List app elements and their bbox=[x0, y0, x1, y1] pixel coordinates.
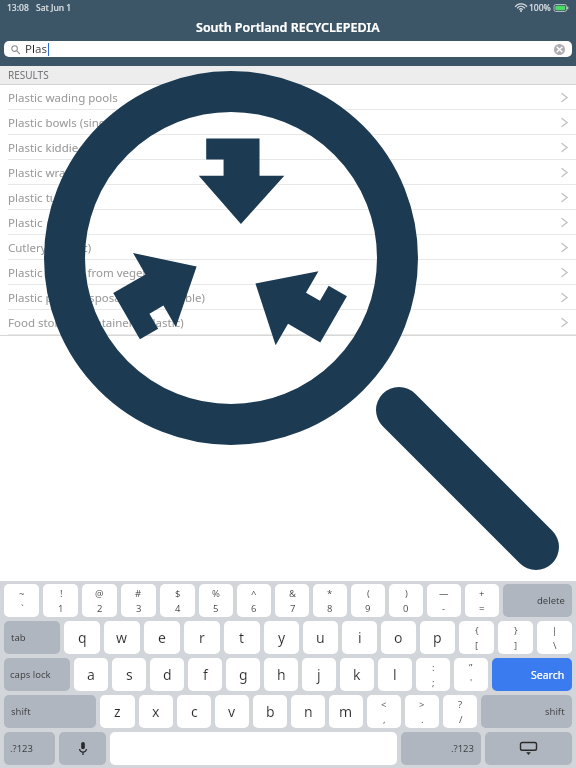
button[interactable]: shift bbox=[481, 695, 572, 728]
button[interactable]: Plastic wading pools bbox=[0, 85, 576, 110]
staticText: } bbox=[514, 624, 518, 637]
button[interactable]: n bbox=[291, 695, 325, 728]
button[interactable]: Food storage containers (plastic) bbox=[0, 310, 576, 335]
button[interactable]: Plastic netting from vegetables bbox=[0, 260, 576, 285]
button[interactable]: t bbox=[224, 621, 260, 654]
button[interactable]: Plas bbox=[4, 41, 572, 57]
button[interactable]: ? bbox=[443, 695, 477, 728]
button[interactable]: o bbox=[381, 621, 416, 654]
button[interactable]: ” bbox=[454, 658, 488, 691]
button[interactable]: Clear text bbox=[551, 41, 567, 57]
staticText: ) bbox=[405, 587, 408, 600]
button[interactable]: plastic tubing bbox=[0, 185, 576, 210]
staticText: shift bbox=[11, 705, 31, 718]
button[interactable]: Search bbox=[492, 658, 572, 691]
button[interactable]: % bbox=[199, 584, 233, 617]
staticText: . bbox=[421, 713, 424, 726]
staticText: ! bbox=[60, 587, 63, 600]
button[interactable]: Plastic kiddie pools bbox=[0, 135, 576, 160]
button[interactable]: d bbox=[150, 658, 184, 691]
staticText: # bbox=[135, 587, 142, 600]
button[interactable]: e bbox=[144, 621, 180, 654]
button[interactable]: a bbox=[74, 658, 108, 691]
button[interactable]: delete bbox=[503, 584, 572, 617]
button[interactable]: ! bbox=[43, 584, 78, 617]
staticText: z bbox=[114, 702, 121, 721]
staticText: + bbox=[479, 587, 485, 600]
button[interactable]: r bbox=[184, 621, 220, 654]
button[interactable]: x bbox=[139, 695, 173, 728]
button[interactable]: Plastic bowls (single-use) bbox=[0, 110, 576, 135]
button[interactable]: y bbox=[264, 621, 299, 654]
button[interactable]: h bbox=[264, 658, 298, 691]
button[interactable]: tab bbox=[4, 621, 60, 654]
staticText: 0 bbox=[403, 602, 409, 615]
button[interactable]: ) bbox=[389, 584, 423, 617]
button[interactable]: l bbox=[378, 658, 412, 691]
staticText: p bbox=[433, 628, 442, 647]
staticText: = bbox=[479, 602, 485, 615]
button[interactable]: : bbox=[416, 658, 450, 691]
button[interactable]: * bbox=[313, 584, 347, 617]
button[interactable]: ( bbox=[351, 584, 385, 617]
button[interactable]: $ bbox=[160, 584, 195, 617]
button[interactable]: q bbox=[64, 621, 100, 654]
button[interactable]: caps lock bbox=[4, 658, 70, 691]
button[interactable]: g bbox=[226, 658, 260, 691]
staticText: b bbox=[266, 702, 275, 721]
button[interactable]: } bbox=[498, 621, 533, 654]
button[interactable]: k bbox=[340, 658, 374, 691]
staticText: i bbox=[358, 628, 362, 647]
button[interactable]: ^ bbox=[237, 584, 271, 617]
button[interactable]: Dictate bbox=[59, 732, 106, 765]
button[interactable]: i bbox=[342, 621, 377, 654]
button[interactable]: + bbox=[465, 584, 499, 617]
button[interactable]: { bbox=[459, 621, 494, 654]
button[interactable]: v bbox=[215, 695, 249, 728]
button[interactable]: | bbox=[537, 621, 572, 654]
button[interactable]: Plastic wrap bbox=[0, 160, 576, 185]
staticText: ~ bbox=[19, 587, 25, 600]
button[interactable]: w bbox=[104, 621, 140, 654]
button[interactable]: f bbox=[188, 658, 222, 691]
button[interactable]: j bbox=[302, 658, 336, 691]
staticText: r bbox=[199, 628, 205, 647]
staticText: % bbox=[212, 587, 220, 600]
staticText: Plas bbox=[25, 41, 47, 57]
button[interactable]: Hide keyboard bbox=[485, 732, 572, 765]
staticText: [ bbox=[475, 639, 479, 652]
staticText: y bbox=[278, 628, 286, 647]
button[interactable]: shift bbox=[4, 695, 96, 728]
staticText: & bbox=[289, 587, 296, 600]
staticText: caps lock bbox=[10, 668, 51, 681]
staticText: 7 bbox=[290, 602, 296, 615]
button[interactable]: u bbox=[303, 621, 338, 654]
button[interactable]: @ bbox=[82, 584, 117, 617]
button[interactable]: — bbox=[427, 584, 461, 617]
button[interactable]: s bbox=[112, 658, 146, 691]
staticText: tab bbox=[11, 631, 26, 644]
staticText: o bbox=[394, 628, 403, 647]
button[interactable]: m bbox=[329, 695, 363, 728]
button[interactable]: c bbox=[177, 695, 211, 728]
staticText: < bbox=[381, 698, 387, 711]
staticText: f bbox=[203, 665, 208, 684]
staticText: 9 bbox=[365, 602, 371, 615]
button[interactable]: & bbox=[275, 584, 309, 617]
staticText: 3 bbox=[136, 602, 142, 615]
button[interactable]: p bbox=[420, 621, 455, 654]
button[interactable]: b bbox=[253, 695, 287, 728]
button[interactable]: < bbox=[367, 695, 401, 728]
button[interactable]: Plastic bbox=[0, 210, 576, 235]
button[interactable]: > bbox=[405, 695, 439, 728]
button[interactable]: .?123 bbox=[4, 732, 55, 765]
button[interactable]: Plastic plate (disposable or reusable) bbox=[0, 285, 576, 310]
button[interactable]: z bbox=[100, 695, 135, 728]
button[interactable]: ~ bbox=[4, 584, 39, 617]
button[interactable]: Cutlery (plastic) bbox=[0, 235, 576, 260]
button[interactable]: .?123 bbox=[401, 732, 481, 765]
staticText: 8 bbox=[327, 602, 333, 615]
staticText: * bbox=[327, 587, 333, 600]
button[interactable]: # bbox=[121, 584, 156, 617]
